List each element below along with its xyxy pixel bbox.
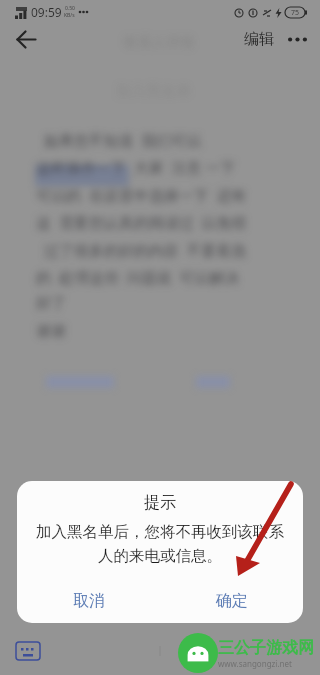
button[interactable]: Keyboard	[16, 642, 40, 660]
staticText: 的 处理这些 问题就 可以解决	[36, 267, 240, 287]
staticText: 可以的 在设置中选择一下 还有	[36, 185, 247, 205]
staticText: www.sangongzi.net	[218, 658, 292, 669]
staticText: 谢谢	[36, 322, 66, 341]
staticText: 好了	[36, 294, 66, 313]
staticText: KB/s	[64, 12, 75, 19]
staticText: 取消	[73, 591, 105, 611]
staticText: 09:59	[31, 4, 62, 20]
staticText: 这样操作一下 大家 注意 一下	[36, 157, 236, 177]
button[interactable]: Back	[6, 19, 46, 59]
button[interactable]: 取消	[17, 579, 160, 623]
staticText: 如果您不知道 我们可以	[36, 130, 202, 150]
staticText: 过了很多的好的内容 不要着急	[36, 240, 247, 260]
staticText: 这 需要您认真的阅读过 以免错	[36, 212, 247, 232]
staticText: 编辑	[244, 30, 274, 49]
staticText: 提示	[17, 493, 303, 513]
button[interactable]: 编辑	[238, 24, 280, 55]
staticText: 加入黑名单后，您将不再收到该联系 人的来电或信息。	[17, 522, 303, 566]
staticText: 确定	[216, 591, 248, 611]
button[interactable]: 确定	[160, 579, 303, 623]
staticText: 0.50	[65, 5, 75, 12]
staticText: 75	[291, 8, 300, 18]
staticText: 三公子游戏网	[218, 638, 314, 658]
button[interactable]: More options	[280, 22, 314, 56]
